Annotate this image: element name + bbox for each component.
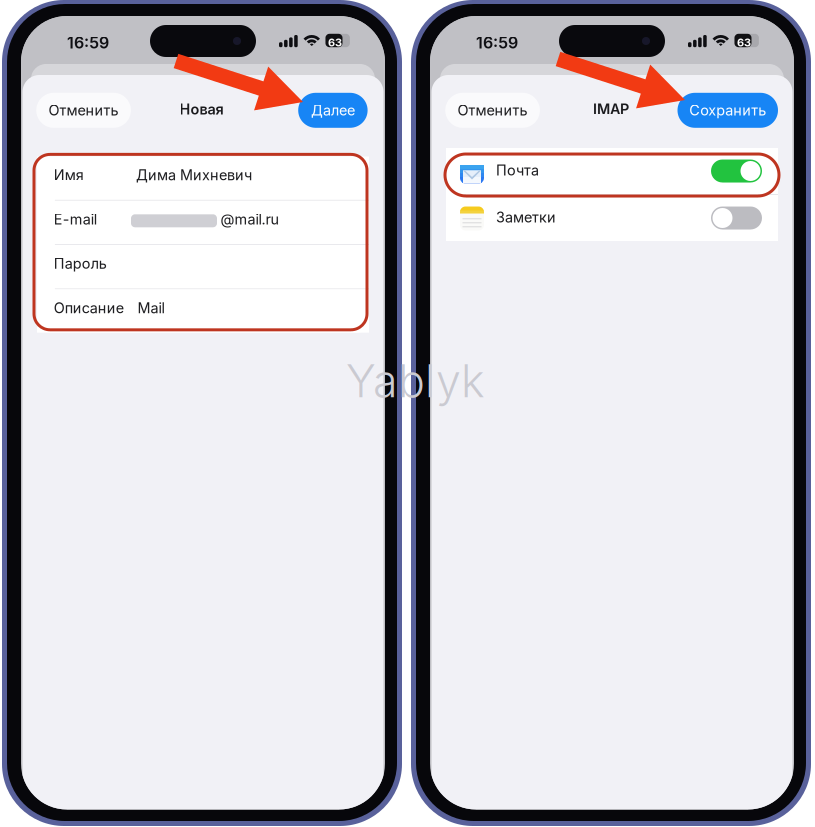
button[interactable]: Почта	[446, 148, 778, 194]
button[interactable]: Далее	[298, 93, 368, 128]
staticText: 63	[328, 36, 342, 49]
button[interactable]: Отменить	[445, 93, 540, 128]
staticText: Mail	[137, 299, 164, 317]
staticText: Yablyk	[346, 354, 485, 408]
staticText: 16:59	[67, 33, 109, 52]
staticText: Далее	[311, 102, 355, 119]
button[interactable]: Заметки	[446, 195, 778, 241]
staticText: 16:59	[476, 33, 518, 52]
staticText: Заметки	[496, 208, 556, 226]
staticText: @mail.ru	[220, 211, 279, 228]
staticText: Пароль	[54, 255, 107, 272]
staticText: Новая	[179, 100, 223, 118]
button[interactable]: Отменить	[36, 93, 131, 128]
button[interactable]: Сохранить	[677, 93, 778, 128]
staticText: Имя	[54, 166, 84, 184]
staticText: 63	[737, 36, 751, 49]
staticText: Описание	[54, 299, 124, 317]
staticText: Сохранить	[689, 102, 766, 119]
staticText: Отменить	[458, 102, 528, 119]
staticText: Почта	[496, 161, 539, 179]
staticText: Дима Михневич	[136, 166, 252, 184]
staticText: Отменить	[49, 102, 119, 119]
staticText: IMAP	[593, 100, 629, 118]
staticText: E-mail	[54, 211, 97, 228]
